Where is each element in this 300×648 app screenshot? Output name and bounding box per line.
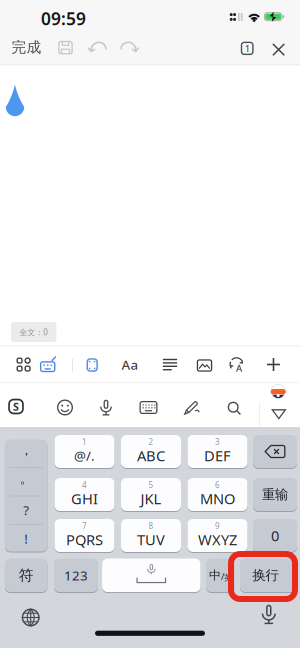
button[interactable]: 保存 bbox=[52, 34, 78, 60]
staticText: 6 bbox=[215, 480, 220, 490]
button[interactable]: 8 bbox=[121, 518, 181, 552]
staticText: 全文：0 bbox=[19, 327, 48, 337]
staticText: 2 bbox=[148, 437, 153, 447]
staticText: ABC bbox=[137, 446, 165, 465]
button[interactable]: 听写 bbox=[260, 604, 277, 625]
button[interactable]: 搜索 bbox=[227, 401, 241, 415]
button[interactable]: 换行 bbox=[240, 558, 297, 592]
button[interactable]: 插入图片 bbox=[196, 359, 212, 372]
button[interactable]: 0 bbox=[253, 518, 297, 552]
button[interactable]: 7 bbox=[54, 518, 114, 552]
button[interactable]: 页面列表 bbox=[235, 36, 259, 60]
staticText: ? bbox=[23, 501, 29, 519]
button[interactable]: 符号 bbox=[5, 558, 47, 592]
staticText: 中 bbox=[209, 568, 221, 583]
staticText: 换行 bbox=[252, 567, 278, 583]
button[interactable]: 1 bbox=[54, 434, 114, 468]
button[interactable]: 搜狗 bbox=[6, 397, 25, 416]
button[interactable]: 重做 bbox=[116, 37, 140, 59]
button[interactable]: 斗图 bbox=[270, 383, 286, 399]
staticText: ! bbox=[24, 530, 28, 547]
staticText: TUV bbox=[137, 530, 165, 549]
staticText: 5 bbox=[148, 480, 153, 490]
staticText: 符 bbox=[19, 566, 34, 584]
button[interactable]: 数字 bbox=[54, 558, 98, 592]
button[interactable]: 段落 bbox=[162, 358, 177, 370]
staticText: @/. bbox=[74, 447, 95, 464]
staticText: GHI bbox=[71, 489, 98, 508]
button[interactable]: 删除 bbox=[253, 434, 297, 468]
staticText: A bbox=[236, 362, 242, 374]
button[interactable]: 手写 bbox=[182, 399, 200, 415]
button[interactable]: 重输 bbox=[253, 477, 297, 511]
button[interactable]: 更多 bbox=[265, 356, 281, 372]
button[interactable]: 语音 bbox=[99, 399, 112, 416]
staticText: 8 bbox=[148, 521, 153, 531]
button[interactable]: 9 bbox=[187, 518, 247, 552]
button[interactable]: 6 bbox=[187, 477, 247, 511]
staticText: 123 bbox=[64, 566, 88, 584]
button[interactable]: 2 bbox=[121, 434, 181, 468]
staticText: 英 bbox=[224, 573, 232, 583]
staticText: ， bbox=[20, 442, 33, 458]
button[interactable]: 收起键盘 bbox=[271, 409, 286, 420]
staticText: 。 bbox=[20, 470, 33, 487]
button[interactable]: 标点 bbox=[5, 439, 47, 552]
button[interactable]: 模板 bbox=[15, 356, 31, 372]
button[interactable]: 空格 bbox=[102, 558, 201, 592]
button[interactable]: 完成 bbox=[4, 33, 48, 61]
button[interactable]: 键盘切换 bbox=[139, 400, 158, 414]
staticText: S bbox=[13, 399, 19, 414]
staticText: 重输 bbox=[262, 486, 288, 503]
button[interactable]: 5 bbox=[121, 477, 181, 511]
button[interactable]: 4 bbox=[54, 477, 114, 511]
staticText: MNO bbox=[200, 489, 235, 508]
staticText: JKL bbox=[140, 489, 161, 508]
button[interactable]: 翻译 bbox=[228, 357, 245, 373]
staticText: 7 bbox=[82, 521, 87, 531]
staticText: DEF bbox=[204, 446, 231, 465]
staticText: 4 bbox=[82, 480, 87, 490]
staticText: 3 bbox=[215, 437, 220, 447]
button[interactable]: 中英切换 bbox=[206, 558, 235, 592]
button[interactable]: 剪贴板 bbox=[86, 357, 99, 372]
button[interactable]: 3 bbox=[187, 434, 247, 468]
staticText: 完成 bbox=[11, 38, 41, 56]
button[interactable]: 速记 bbox=[39, 356, 57, 373]
staticText: 9 bbox=[215, 521, 220, 531]
button[interactable]: 切换键盘 bbox=[21, 607, 41, 627]
button[interactable]: 表情 bbox=[56, 399, 73, 416]
button[interactable]: 关闭 bbox=[268, 38, 290, 61]
staticText: PQRS bbox=[66, 530, 103, 549]
staticText: 1 bbox=[82, 437, 87, 447]
button[interactable]: 撤销 bbox=[87, 37, 111, 59]
staticText: Aa bbox=[121, 356, 138, 373]
staticText: / bbox=[221, 570, 224, 583]
staticText: 09:59 bbox=[41, 7, 86, 30]
staticText: 1 bbox=[245, 42, 250, 55]
staticText: WXYZ bbox=[198, 530, 237, 549]
staticText: 0 bbox=[271, 526, 279, 545]
button[interactable]: 字体样式 bbox=[118, 354, 142, 374]
